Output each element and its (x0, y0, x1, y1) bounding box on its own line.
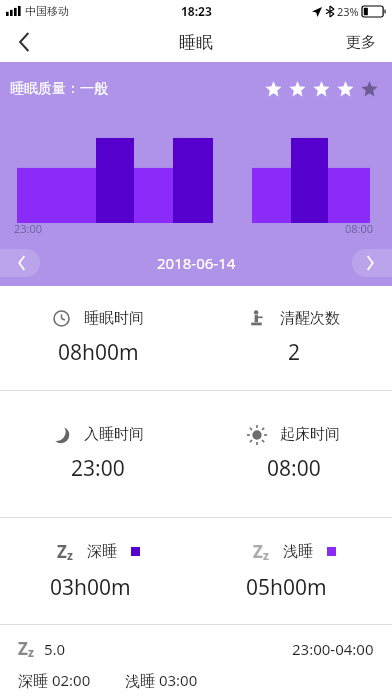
staticText: 23% (337, 4, 359, 19)
staticText: z (28, 644, 34, 660)
staticText: 深睡 (87, 542, 117, 561)
staticText: 03h00m (50, 573, 131, 602)
staticText: 2 (288, 338, 301, 367)
staticText: 08:00 (267, 454, 321, 483)
staticText: 睡眠时间 (84, 309, 144, 328)
button[interactable]: Z (0, 518, 196, 624)
staticText: 深睡 02:00 (18, 670, 91, 690)
staticText: 睡眠质量：一般 (10, 80, 108, 98)
button[interactable]: Next day (352, 249, 392, 277)
staticText: 起床时间 (280, 425, 340, 444)
button[interactable]: 睡眠时间 (0, 286, 196, 390)
staticText: 5.0 (44, 639, 66, 659)
button[interactable]: 起床时间 (196, 391, 392, 517)
staticText: Z (57, 540, 67, 563)
staticText: 入睡时间 (84, 425, 144, 444)
button[interactable]: 清醒次数 (196, 286, 392, 390)
staticText: z (263, 547, 269, 563)
staticText: 23:00 (14, 221, 43, 236)
button[interactable]: 更多 (330, 22, 392, 62)
staticText: 23:00-04:00 (292, 639, 374, 659)
staticText: 08:00 (345, 221, 374, 236)
staticText: 中国移动 (25, 4, 69, 18)
staticText: 睡眠 (179, 32, 213, 53)
staticText: 23:00 (71, 454, 125, 483)
button[interactable]: Previous day (0, 249, 40, 277)
staticText: 更多 (346, 33, 376, 52)
button[interactable]: Z (0, 625, 392, 690)
staticText: Z (253, 540, 263, 563)
staticText: 浅睡 03:00 (125, 670, 198, 690)
staticText: 2018-06-14 (157, 253, 236, 273)
staticText: 18:23 (181, 3, 212, 19)
staticText: 08h00m (58, 338, 139, 367)
button[interactable]: Back (0, 22, 48, 62)
button[interactable]: Z (196, 518, 392, 624)
staticText: 05h00m (246, 573, 327, 602)
staticText: 浅睡 (283, 542, 313, 561)
staticText: z (67, 547, 73, 563)
staticText: Z (18, 637, 28, 660)
staticText: 清醒次数 (280, 309, 340, 328)
button[interactable]: 入睡时间 (0, 391, 196, 517)
